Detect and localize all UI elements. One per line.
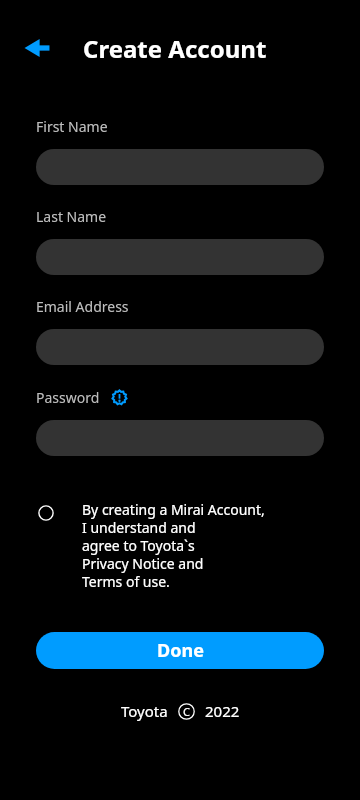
button[interactable] — [36, 329, 324, 365]
staticText: By creating a Mirai Account, I understan… — [82, 500, 265, 591]
button[interactable] — [36, 239, 324, 275]
other: Accept terms — [36, 503, 56, 523]
button[interactable]: Password requirements — [109, 387, 129, 407]
staticText: Password — [36, 388, 100, 407]
staticText: Create Account — [83, 32, 267, 65]
staticText: Email Address — [36, 297, 129, 316]
staticText: Done — [157, 638, 204, 663]
button[interactable] — [36, 420, 324, 456]
staticText: 2022 — [205, 701, 240, 721]
staticText: C — [183, 704, 190, 719]
button[interactable]: Back — [15, 26, 59, 70]
staticText: Last Name — [36, 207, 107, 226]
staticText: Toyota — [121, 701, 168, 721]
button[interactable]: Done — [36, 632, 324, 669]
staticText: First Name — [36, 117, 108, 136]
button[interactable]: Accept terms — [36, 500, 324, 591]
button[interactable] — [36, 149, 324, 185]
